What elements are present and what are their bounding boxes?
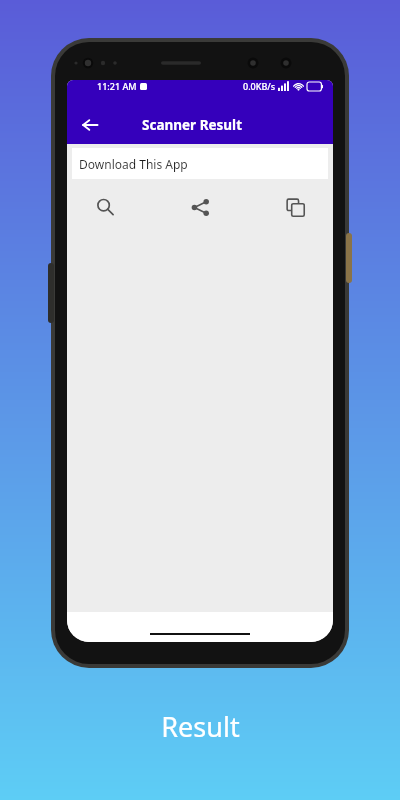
- button[interactable]: Search: [85, 187, 125, 227]
- staticText: Download This App: [79, 156, 188, 172]
- staticText: Result: [161, 708, 240, 745]
- staticText: Scanner Result: [142, 116, 242, 134]
- button[interactable]: Copy: [275, 187, 315, 227]
- staticText: 0.0KB/s: [243, 80, 276, 92]
- button[interactable]: Share: [180, 187, 220, 227]
- button[interactable]: Download This App: [72, 148, 328, 179]
- staticText: 11:21 AM: [97, 80, 137, 92]
- button[interactable]: Back: [73, 108, 107, 142]
